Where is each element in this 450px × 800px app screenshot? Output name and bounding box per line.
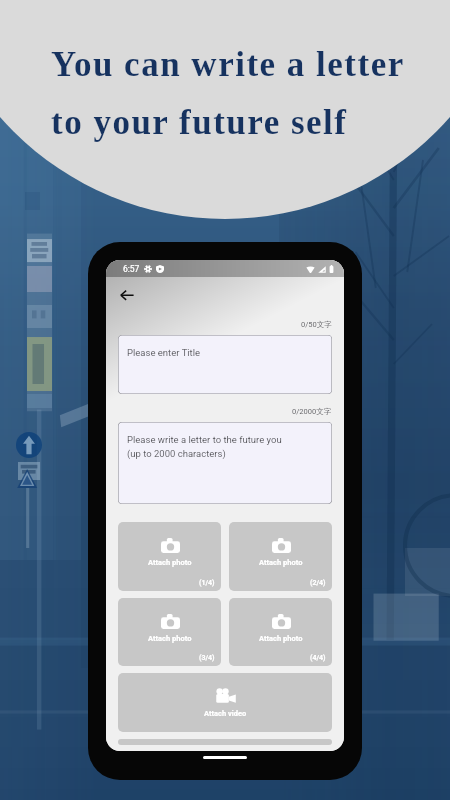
button[interactable]: Attach photo bbox=[229, 522, 332, 591]
staticText: 0/2000文字 bbox=[292, 407, 332, 416]
button[interactable]: Attach photo bbox=[118, 598, 221, 666]
staticText: (2/4) bbox=[310, 579, 326, 587]
staticText: Attach video bbox=[204, 709, 247, 718]
staticText: to your future self bbox=[51, 103, 348, 142]
staticText: (up to 2000 characters) bbox=[127, 448, 226, 459]
staticText: Attach photo bbox=[259, 558, 303, 567]
staticText: You can write a letter bbox=[51, 45, 405, 84]
button[interactable]: Attach photo bbox=[118, 522, 221, 591]
button[interactable]: Please write a letter to the future you bbox=[118, 422, 332, 504]
staticText: Please write a letter to the future you bbox=[127, 434, 282, 445]
staticText: (1/4) bbox=[199, 579, 215, 587]
button[interactable]: Please enter Title bbox=[118, 335, 332, 394]
staticText: 6:57 bbox=[123, 264, 140, 274]
staticText: Attach photo bbox=[259, 634, 303, 643]
button[interactable]: Attach video bbox=[118, 673, 332, 732]
staticText: Attach photo bbox=[148, 634, 192, 643]
staticText: (3/4) bbox=[199, 654, 215, 662]
staticText: 0/50文字 bbox=[301, 320, 332, 329]
staticText: Please enter Title bbox=[127, 347, 201, 358]
staticText: (4/4) bbox=[310, 654, 326, 662]
button[interactable]: Back bbox=[115, 283, 139, 307]
staticText: Attach photo bbox=[148, 558, 192, 567]
button[interactable]: Attach photo bbox=[229, 598, 332, 666]
